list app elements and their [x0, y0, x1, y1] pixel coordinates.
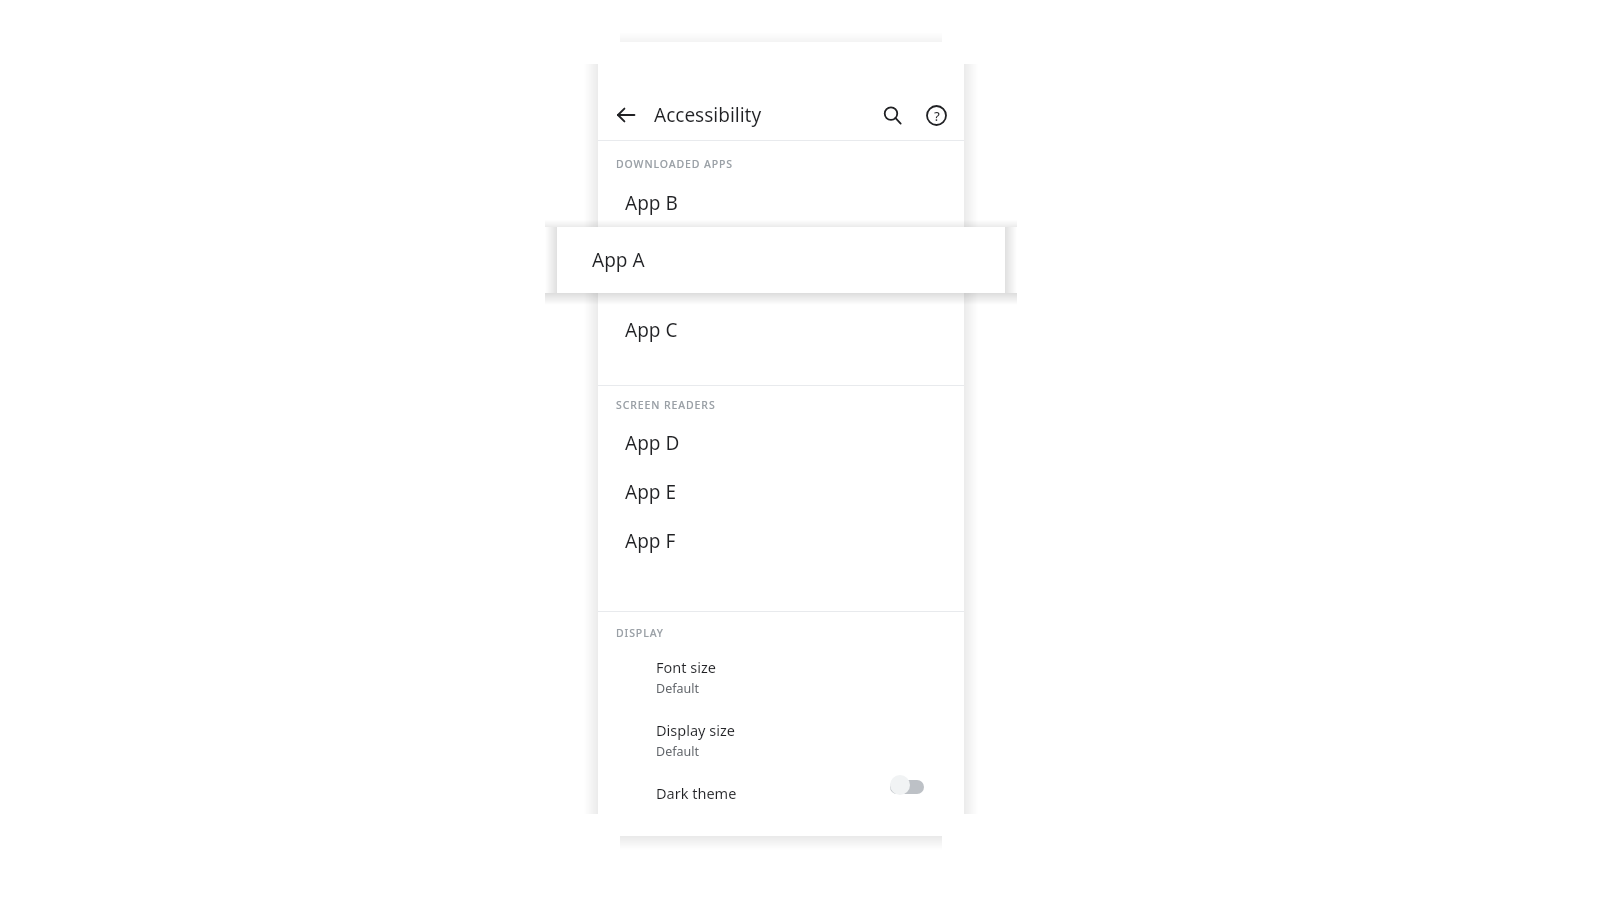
staticText: ?	[934, 107, 940, 125]
staticText: DISPLAY	[616, 626, 664, 640]
button[interactable]: Back	[604, 93, 648, 137]
staticText: App D	[625, 430, 680, 456]
staticText: Accessibility	[654, 102, 870, 128]
staticText: Default	[656, 680, 699, 697]
button[interactable]: App E	[598, 467, 964, 516]
staticText: Default	[656, 743, 699, 760]
button[interactable]: Display size	[598, 709, 964, 772]
button[interactable]: App D	[598, 418, 964, 467]
button[interactable]: Search	[870, 93, 914, 137]
staticText: DOWNLOADED APPS	[616, 157, 734, 171]
staticText: App C	[625, 317, 678, 343]
staticText: App E	[625, 479, 677, 505]
button[interactable]: App F	[598, 516, 964, 565]
button[interactable]: App C	[598, 304, 964, 356]
button[interactable]: Help	[914, 93, 958, 137]
staticText: Font size	[656, 657, 716, 677]
staticText: App B	[625, 190, 678, 216]
staticText: Dark theme	[656, 783, 890, 803]
staticText: App A	[592, 247, 645, 273]
staticText: App F	[625, 528, 676, 554]
staticText: SCREEN READERS	[616, 398, 716, 412]
button[interactable]: App A	[557, 227, 1005, 293]
button[interactable]: Dark theme	[598, 772, 964, 826]
button[interactable]: App B	[598, 177, 964, 229]
button[interactable]: Font size	[598, 646, 964, 709]
staticText: Display size	[656, 720, 735, 740]
